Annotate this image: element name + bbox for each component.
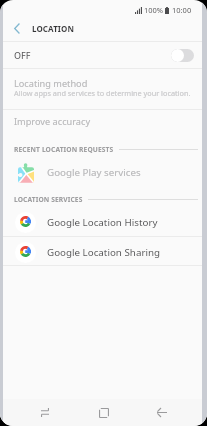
button[interactable]: Recent apps — [31, 399, 59, 426]
button[interactable]: Navigate up — [7, 19, 25, 37]
button[interactable]: Back — [148, 399, 176, 426]
button[interactable]: Google Location History — [0, 210, 207, 234]
staticText: 10:00 — [172, 5, 192, 15]
button[interactable]: Google Play services — [0, 161, 207, 184]
staticText: 100% — [144, 5, 164, 15]
button[interactable]: Locating method — [0, 69, 207, 109]
staticText: Improve accuracy — [14, 115, 91, 128]
button[interactable]: Improve accuracy — [0, 110, 207, 133]
staticText: Google Location History — [47, 216, 158, 229]
staticText: LOCATION SERVICES — [14, 195, 83, 204]
staticText: RECENT LOCATION REQUESTS — [14, 145, 114, 154]
staticText: Allow apps and services to determine you… — [14, 88, 191, 98]
staticText: LOCATION — [32, 23, 75, 34]
button[interactable]: OFF — [0, 42, 207, 68]
staticText: Google Location Sharing — [47, 246, 161, 259]
staticText: Locating method — [14, 77, 88, 90]
staticText: OFF — [14, 49, 31, 61]
button[interactable]: Google Location Sharing — [0, 240, 207, 264]
button[interactable]: Home — [90, 399, 118, 426]
staticText: Google Play services — [47, 166, 141, 179]
